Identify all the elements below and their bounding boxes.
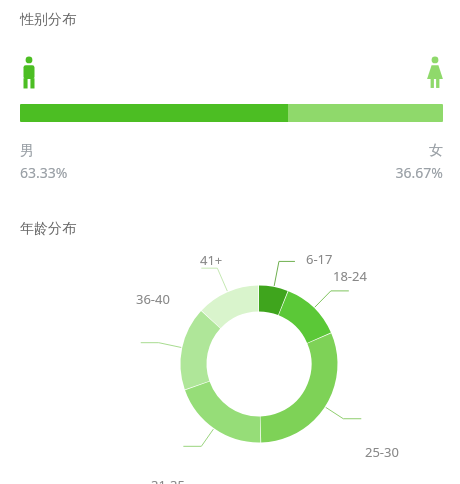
button[interactable]: 25-30 xyxy=(365,443,399,461)
staticText: 41+ xyxy=(200,251,223,269)
staticText: 36.67% xyxy=(395,163,443,182)
button[interactable]: 性别分布 xyxy=(20,11,76,29)
button[interactable]: 年龄分布环形图 xyxy=(0,240,460,484)
staticText: 男 xyxy=(20,142,34,160)
staticText: 25-30 xyxy=(365,443,399,461)
staticText: 63.33% xyxy=(20,163,68,182)
button[interactable]: 6-17 xyxy=(306,250,333,268)
button[interactable]: 男性 xyxy=(18,56,40,90)
button[interactable]: 41+ xyxy=(200,251,223,269)
button[interactable] xyxy=(20,104,443,122)
button[interactable]: 31-35 xyxy=(151,476,185,484)
staticText: 性别分布 xyxy=(20,11,76,29)
button[interactable]: 18-24 xyxy=(333,267,367,285)
staticText: 18-24 xyxy=(333,267,367,285)
button[interactable]: 女 xyxy=(370,142,443,182)
staticText: 年龄分布 xyxy=(20,220,76,238)
button[interactable]: 36-40 xyxy=(136,290,170,308)
button[interactable]: 女性 xyxy=(424,56,446,90)
button[interactable]: 年龄分布 xyxy=(20,220,76,238)
staticText: 6-17 xyxy=(306,250,333,268)
button[interactable]: 男 xyxy=(20,142,68,182)
staticText: 31-35 xyxy=(151,476,185,484)
staticText: 女 xyxy=(429,142,443,160)
staticText: 36-40 xyxy=(136,290,170,308)
